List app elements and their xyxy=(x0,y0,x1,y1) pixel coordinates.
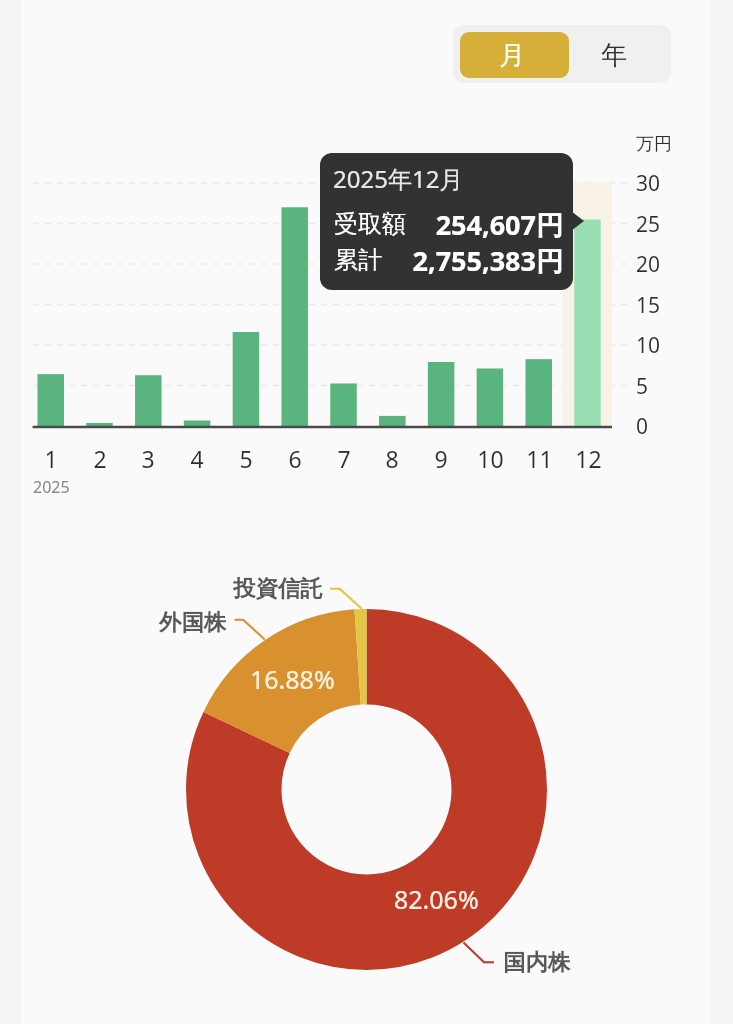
button[interactable]: 資産配分 円グラフ xyxy=(186,609,547,970)
staticText: 82.06% xyxy=(394,882,479,916)
staticText: 254,607円 xyxy=(333,206,563,243)
staticText: 11 xyxy=(526,443,553,473)
staticText: 6 xyxy=(288,443,302,473)
staticText: 9 xyxy=(434,443,448,473)
staticText: 5 xyxy=(239,443,253,473)
staticText: 8 xyxy=(385,443,399,473)
staticText: 25 xyxy=(636,210,661,239)
button[interactable]: 2月の受取額 xyxy=(75,183,124,440)
staticText: 投資信託 xyxy=(233,574,323,602)
staticText: 国内株 xyxy=(503,948,571,976)
button[interactable]: 11月の受取額 xyxy=(514,183,563,440)
staticText: 外国株 xyxy=(159,608,227,636)
staticText: 4 xyxy=(190,443,204,473)
button[interactable]: 6月の受取額 xyxy=(270,183,319,440)
staticText: 10 xyxy=(636,331,661,360)
button[interactable]: 4月の受取額 xyxy=(173,183,222,440)
button[interactable]: 年 xyxy=(569,32,664,78)
staticText: 15 xyxy=(636,291,661,320)
button[interactable]: 5月の受取額 xyxy=(222,183,271,440)
staticText: 受取額 xyxy=(334,209,406,239)
button[interactable]: 月 xyxy=(460,32,569,78)
button[interactable]: 1月の受取額 xyxy=(26,183,75,440)
staticText: 30 xyxy=(636,169,661,198)
staticText: 12 xyxy=(575,443,602,473)
staticText: 月 xyxy=(499,39,525,72)
button[interactable]: 3月の受取額 xyxy=(124,183,173,440)
staticText: 10 xyxy=(477,443,504,473)
staticText: 1 xyxy=(44,443,58,473)
staticText: 年 xyxy=(601,39,627,72)
staticText: 16.88% xyxy=(250,662,335,696)
staticText: 3 xyxy=(141,443,155,473)
staticText: 万円 xyxy=(636,133,672,156)
staticText: 2 xyxy=(93,443,107,473)
staticText: 0 xyxy=(636,412,649,441)
staticText: 2025 xyxy=(33,476,70,498)
staticText: 5 xyxy=(636,372,649,401)
button[interactable]: 2025年12月 xyxy=(320,153,573,290)
staticText: 累計 xyxy=(334,245,382,275)
button[interactable]: 7月の受取額 xyxy=(319,183,368,440)
button[interactable]: 10月の受取額 xyxy=(466,183,515,440)
staticText: 2025年12月 xyxy=(333,162,464,195)
button[interactable]: 9月の受取額 xyxy=(417,183,466,440)
staticText: 20 xyxy=(636,250,661,279)
button[interactable]: 12月の受取額 xyxy=(563,183,612,440)
staticText: 2,755,383円 xyxy=(333,242,563,279)
button[interactable]: 8月の受取額 xyxy=(368,183,417,440)
staticText: 7 xyxy=(337,443,351,473)
